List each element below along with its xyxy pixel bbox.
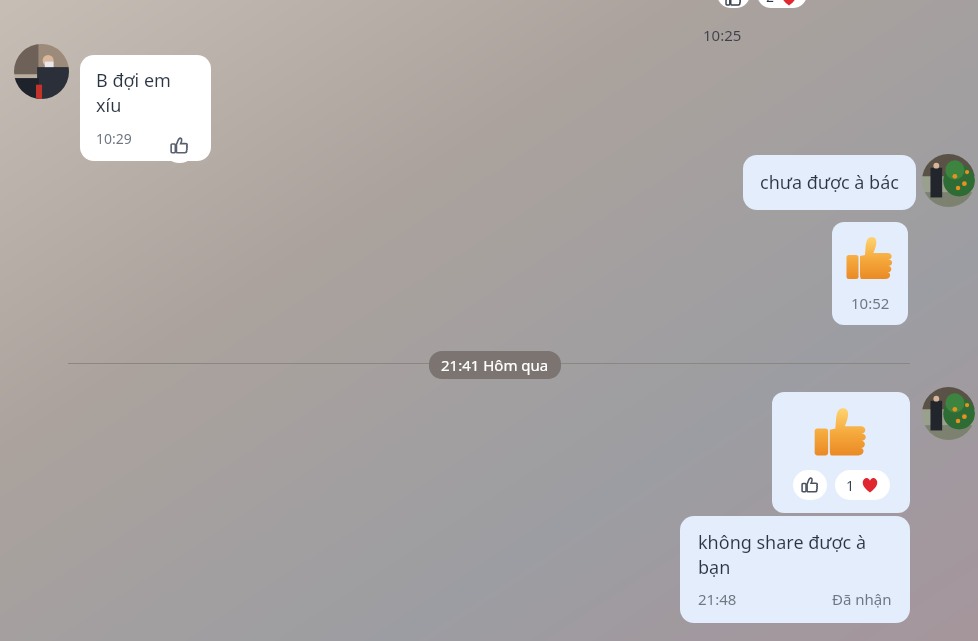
button[interactable]: Like reaction xyxy=(162,128,197,163)
button[interactable]: Like reaction xyxy=(717,0,750,8)
staticText: 21:41 Hôm qua xyxy=(441,355,549,375)
staticText: 10:25 xyxy=(703,25,742,45)
button[interactable]: chưa được à bác xyxy=(743,155,916,210)
button[interactable]: 2 xyxy=(757,0,807,8)
staticText: không share được à bạn xyxy=(698,530,892,580)
staticText: 2 xyxy=(766,0,775,6)
button[interactable]: 1 xyxy=(835,470,890,500)
staticText: chưa được à bác xyxy=(760,170,899,195)
staticText: 10:29 xyxy=(96,129,132,148)
button[interactable]: 21:41 Hôm qua xyxy=(429,351,561,379)
button[interactable]: 10:52 xyxy=(832,222,908,325)
button[interactable]: Like reaction xyxy=(772,392,910,513)
button[interactable]: Like reaction xyxy=(793,470,827,500)
staticText: Đã nhận xyxy=(832,589,892,609)
button[interactable]: Profile photo xyxy=(922,387,975,440)
staticText: 10:52 xyxy=(851,293,890,313)
button[interactable]: Profile photo xyxy=(922,154,975,207)
staticText: B đợi em xíu xyxy=(96,68,197,118)
button[interactable]: Profile photo xyxy=(14,44,69,99)
staticText: 1 xyxy=(846,476,855,495)
button[interactable]: không share được à bạn xyxy=(680,516,910,623)
staticText: 21:48 xyxy=(698,589,737,609)
button[interactable]: B đợi em xíu xyxy=(80,55,211,161)
